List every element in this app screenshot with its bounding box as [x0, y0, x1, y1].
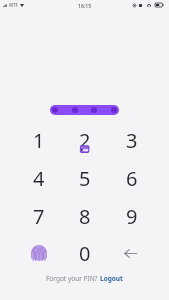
button[interactable]: 8 — [66, 197, 104, 235]
button[interactable]: 6 — [113, 159, 151, 197]
button[interactable]: 4 — [20, 159, 58, 197]
button[interactable]: PIN entry — [50, 105, 119, 115]
staticText: Logout — [100, 274, 123, 283]
button[interactable]: 7 — [20, 197, 58, 235]
button[interactable]: 1 — [20, 121, 58, 159]
staticText: 16:15 — [78, 2, 92, 9]
staticText: 9 — [126, 203, 138, 230]
staticText: 6 — [126, 165, 138, 192]
button[interactable]: 0 — [66, 234, 104, 272]
staticText: 8 — [79, 203, 91, 230]
button[interactable]: 9 — [113, 197, 151, 235]
button[interactable]: 2 — [66, 121, 104, 159]
staticText: Forgot your PIN? — [46, 274, 98, 283]
staticText: 5 — [79, 165, 91, 192]
staticText: 7 — [33, 203, 45, 230]
button[interactable]: Unlock with fingerprint — [20, 235, 58, 273]
staticText: 3 — [126, 127, 138, 154]
staticText: 0 — [79, 240, 91, 267]
button[interactable]: 3 — [113, 121, 151, 159]
staticText: 2 — [79, 127, 91, 154]
staticText: WTF — [9, 2, 18, 8]
button[interactable]: 5 — [66, 159, 104, 197]
staticText: 1 — [33, 127, 45, 154]
button[interactable]: Logout — [100, 274, 123, 283]
staticText: 4 — [33, 165, 45, 192]
button[interactable]: Backspace — [111, 234, 149, 272]
